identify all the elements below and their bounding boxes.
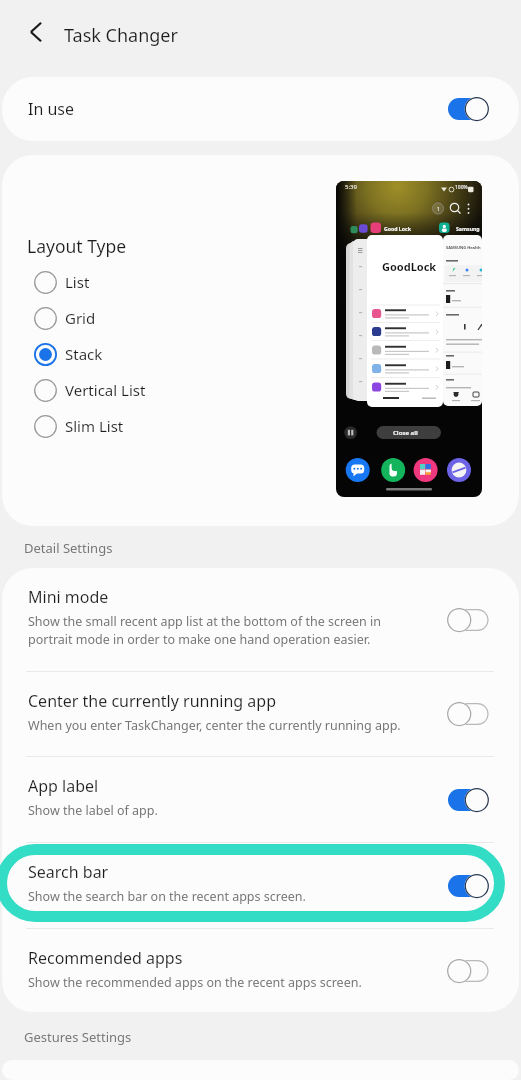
staticText: Detail Settings <box>24 539 113 557</box>
staticText: Stack <box>65 344 103 364</box>
staticText: Close all <box>393 429 418 437</box>
staticText: In use <box>28 98 447 120</box>
staticText: 5:39 <box>345 183 357 191</box>
button[interactable]: App label <box>2 757 519 842</box>
staticText: Show the label of app. <box>28 802 158 819</box>
staticText: Recommended apps <box>28 947 183 969</box>
staticText: When you enter TaskChanger, center the c… <box>28 717 401 734</box>
button[interactable]: List <box>34 264 204 300</box>
staticText: GoodLock <box>382 259 437 274</box>
button[interactable]: Back <box>18 14 54 50</box>
staticText: SAMSUNG Health <box>446 245 481 250</box>
button[interactable]: Grid <box>34 300 204 336</box>
button[interactable]: Stack <box>34 336 204 372</box>
staticText: Good Lock <box>384 225 411 232</box>
staticText: Mini mode <box>28 586 109 608</box>
staticText: Search bar <box>28 861 109 883</box>
staticText: List <box>65 272 90 292</box>
staticText: Show the recommended apps on the recent … <box>28 974 362 991</box>
button[interactable]: Slim List <box>34 408 204 444</box>
staticText: Show the small recent app list at the bo… <box>28 613 418 648</box>
button[interactable]: Mini mode <box>2 568 519 671</box>
staticText: Layout Type <box>27 234 127 258</box>
button[interactable]: Center the currently running app <box>2 672 519 756</box>
button[interactable]: Vertical List <box>34 372 204 408</box>
staticText: Grid <box>65 308 96 328</box>
button[interactable]: Recommended apps <box>2 929 519 1012</box>
staticText: Task Changer <box>64 23 178 48</box>
button[interactable]: Search bar <box>2 843 519 928</box>
staticText: 100% <box>455 184 468 191</box>
staticText: App label <box>28 775 99 797</box>
staticText: Gestures Settings <box>24 1028 132 1046</box>
staticText: Center the currently running app <box>28 690 276 712</box>
staticText: Vertical List <box>65 380 146 400</box>
staticText: Samsung <box>456 225 480 232</box>
staticText: 1 <box>437 206 440 213</box>
button[interactable]: In use <box>2 77 519 141</box>
staticText: Slim List <box>65 416 124 436</box>
staticText: Show the search bar on the recent apps s… <box>28 888 306 905</box>
